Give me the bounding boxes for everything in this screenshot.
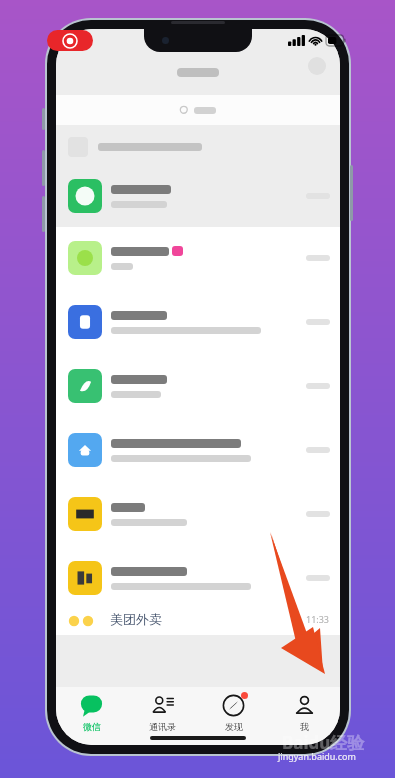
staticText: 美团外卖: [110, 611, 162, 627]
staticText: 我: [300, 721, 309, 732]
staticText: jingyan.baidu.com: [278, 750, 356, 762]
button[interactable]: 我: [269, 687, 340, 745]
staticText: 微信: [83, 721, 101, 732]
button[interactable]: 微信: [56, 687, 127, 745]
button[interactable]: [56, 545, 340, 611]
button[interactable]: 发现: [198, 687, 269, 745]
button[interactable]: [56, 417, 340, 483]
staticText: 发现: [225, 721, 243, 732]
staticText: 11:33: [306, 613, 330, 625]
button[interactable]: [56, 289, 340, 355]
other: Screen recording: [47, 30, 93, 51]
button[interactable]: [56, 227, 340, 289]
staticText: 通讯录: [149, 721, 176, 732]
button[interactable]: Search: [56, 95, 340, 125]
button[interactable]: [56, 355, 340, 417]
button[interactable]: [56, 165, 340, 227]
button[interactable]: [56, 129, 340, 165]
button[interactable]: Add: [308, 57, 326, 75]
button[interactable]: 美团外卖: [56, 611, 340, 635]
button[interactable]: [56, 483, 340, 545]
staticText: Baidu经验: [282, 731, 365, 754]
button[interactable]: 通讯录: [127, 687, 198, 745]
